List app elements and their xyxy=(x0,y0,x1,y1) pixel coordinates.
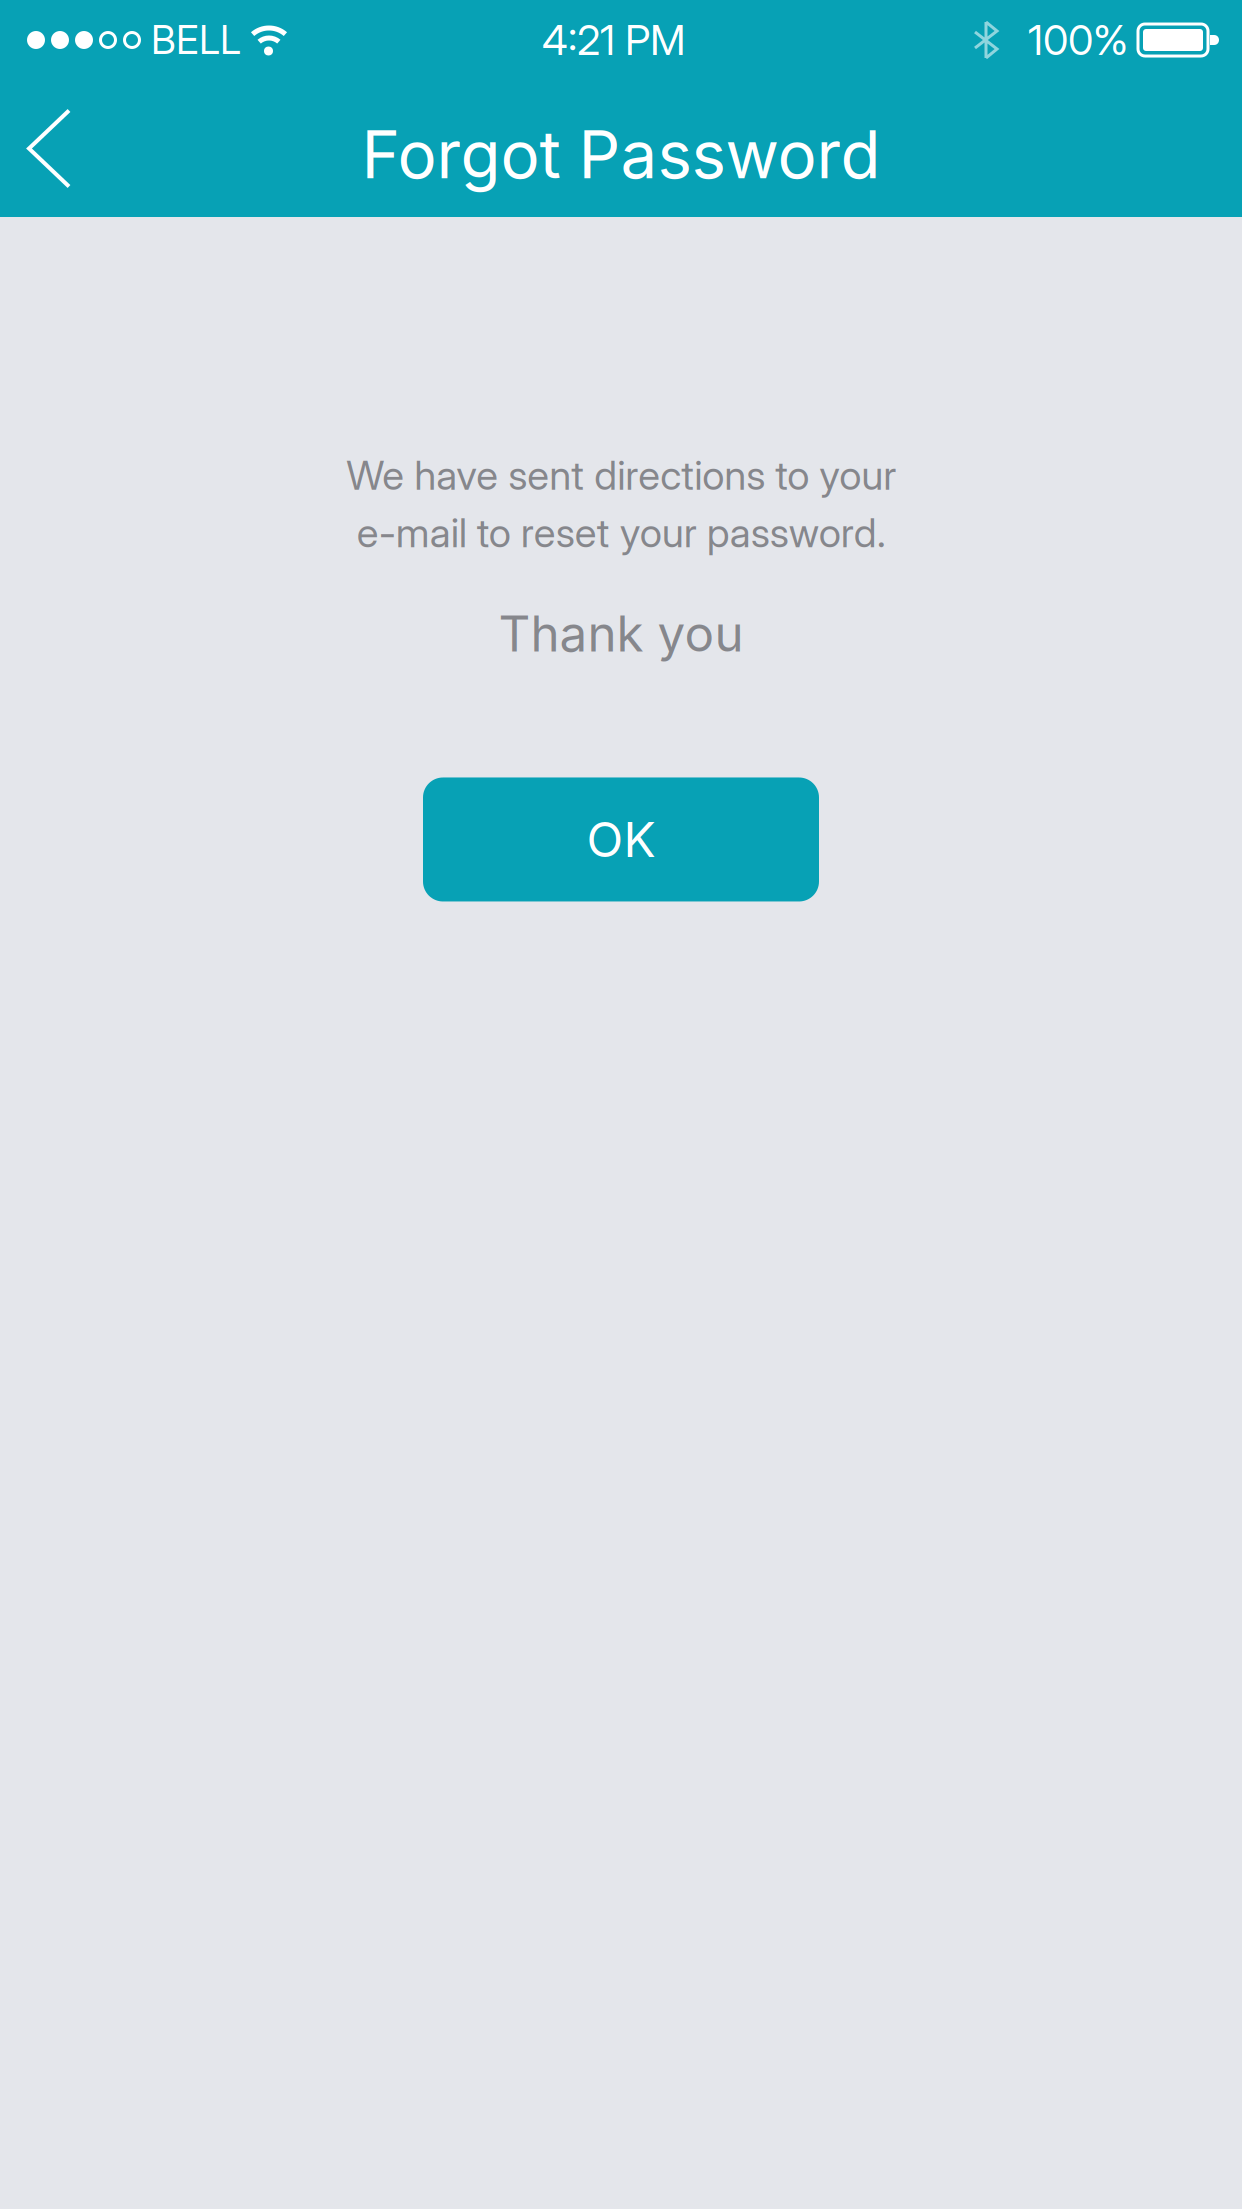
staticText: Thank you xyxy=(498,604,743,663)
staticText: 4:21 PM xyxy=(542,15,686,65)
staticText: Forgot Password xyxy=(361,115,880,194)
staticText: 100% xyxy=(1028,15,1128,65)
staticText: OK xyxy=(586,810,655,868)
button[interactable]: OK xyxy=(423,777,819,901)
staticText: We have sent directions to your e-mail t… xyxy=(346,451,896,557)
button[interactable]: Back xyxy=(0,80,69,216)
staticText: BELL xyxy=(151,17,241,63)
